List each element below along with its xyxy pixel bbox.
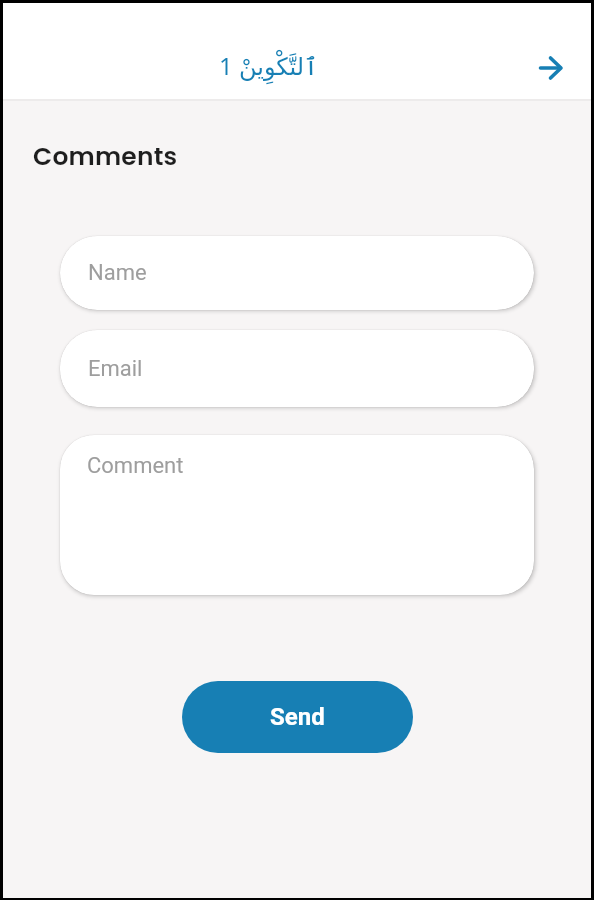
staticText: Comments bbox=[33, 139, 178, 174]
staticText: Comment bbox=[87, 453, 184, 479]
staticText: Send bbox=[270, 703, 325, 731]
button[interactable] bbox=[529, 46, 573, 90]
staticText: ٱلتَّكْوِينْ 1 bbox=[219, 49, 319, 82]
staticText: Name bbox=[88, 260, 147, 286]
button[interactable]: Comment bbox=[60, 435, 534, 595]
staticText: Email bbox=[88, 356, 143, 382]
button[interactable]: Email bbox=[60, 330, 534, 407]
button[interactable]: Send bbox=[182, 681, 413, 753]
button[interactable]: Name bbox=[60, 236, 534, 310]
